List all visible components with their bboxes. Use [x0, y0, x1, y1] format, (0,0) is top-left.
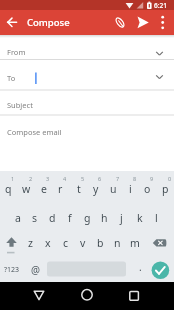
staticText: 4 [63, 175, 67, 182]
staticText: t [77, 182, 81, 196]
staticText: Compose email [7, 127, 62, 137]
button[interactable] [23, 284, 55, 308]
button[interactable]: x [39, 234, 56, 252]
button[interactable] [47, 261, 126, 277]
staticText: 1 [11, 175, 15, 182]
button[interactable]: ?123 [0, 261, 24, 279]
staticText: 0 [168, 175, 172, 182]
button[interactable]: y [87, 180, 104, 198]
staticText: Compose [27, 16, 70, 29]
staticText: p [162, 182, 169, 196]
button[interactable]: b [92, 234, 109, 252]
staticText: 6:21 [154, 1, 167, 10]
staticText: 7 [116, 175, 120, 182]
button[interactable]: a [9, 209, 26, 227]
button[interactable] [0, 37, 174, 60]
button[interactable] [154, 12, 172, 33]
button[interactable]: @ [26, 261, 44, 279]
button[interactable] [71, 284, 103, 308]
staticText: h [101, 211, 108, 225]
staticText: w [22, 182, 31, 196]
staticText: 9 [150, 175, 154, 182]
button[interactable] [151, 261, 170, 280]
button[interactable]: i [122, 180, 139, 198]
staticText: x [45, 236, 51, 250]
button[interactable]: From [7, 44, 157, 60]
button[interactable]: v [74, 234, 91, 252]
button[interactable]: m [126, 234, 143, 252]
button[interactable]: u [105, 180, 122, 198]
button[interactable] [0, 60, 174, 90]
button[interactable]: g [79, 209, 96, 227]
button[interactable]: s [26, 209, 43, 227]
staticText: u [110, 182, 117, 196]
button[interactable]: o [139, 180, 156, 198]
button[interactable]: n [109, 234, 126, 252]
button[interactable]: p [157, 180, 174, 198]
button[interactable] [133, 12, 154, 33]
staticText: s [32, 211, 38, 225]
staticText: e [41, 182, 47, 196]
button[interactable]: q [0, 180, 17, 198]
button[interactable]: f [61, 209, 78, 227]
staticText: 6 [98, 175, 102, 182]
button[interactable] [0, 90, 174, 115]
staticText: From [7, 47, 26, 57]
staticText: d [49, 211, 56, 225]
staticText: o [144, 182, 151, 196]
staticText: g [84, 211, 91, 225]
button[interactable] [118, 284, 150, 308]
button[interactable] [110, 12, 131, 33]
button[interactable]: To [7, 70, 31, 86]
staticText: ?123 [4, 265, 20, 275]
staticText: q [5, 182, 12, 196]
button[interactable]: c [57, 234, 74, 252]
button[interactable]: d [44, 209, 61, 227]
staticText: 3 [46, 175, 50, 182]
button[interactable]: e [35, 180, 52, 198]
staticText: v [80, 236, 86, 250]
staticText: b [97, 236, 104, 250]
staticText: f [68, 211, 72, 225]
staticText: i [129, 182, 132, 196]
staticText: n [114, 236, 121, 250]
staticText: 5 [81, 175, 85, 182]
button[interactable] [2, 232, 22, 254]
staticText: 2 [29, 175, 33, 182]
staticText: r [58, 182, 63, 196]
staticText: . [139, 260, 142, 274]
staticText: c [63, 236, 69, 250]
button[interactable]: Compose email [7, 124, 157, 140]
staticText: a [15, 211, 21, 225]
staticText: To [7, 73, 16, 83]
button[interactable]: z [22, 234, 39, 252]
button[interactable] [150, 232, 172, 254]
staticText: m [130, 236, 140, 250]
staticText: Subject [7, 100, 33, 110]
staticText: 8 [133, 175, 137, 182]
button[interactable]: k [131, 209, 148, 227]
staticText: j [120, 211, 123, 225]
button[interactable] [0, 115, 174, 171]
button[interactable]: . [134, 258, 146, 276]
button[interactable]: r [52, 180, 69, 198]
button[interactable]: j [113, 209, 130, 227]
button[interactable]: h [96, 209, 113, 227]
button[interactable]: w [18, 180, 35, 198]
staticText: k [137, 211, 143, 225]
staticText: y [93, 182, 99, 196]
staticText: z [28, 236, 33, 250]
button[interactable]: t [70, 180, 87, 198]
staticText: @ [31, 263, 40, 277]
button[interactable]: Subject [7, 97, 157, 113]
button[interactable]: l [148, 209, 165, 227]
button[interactable] [2, 12, 22, 33]
staticText: l [155, 211, 158, 225]
